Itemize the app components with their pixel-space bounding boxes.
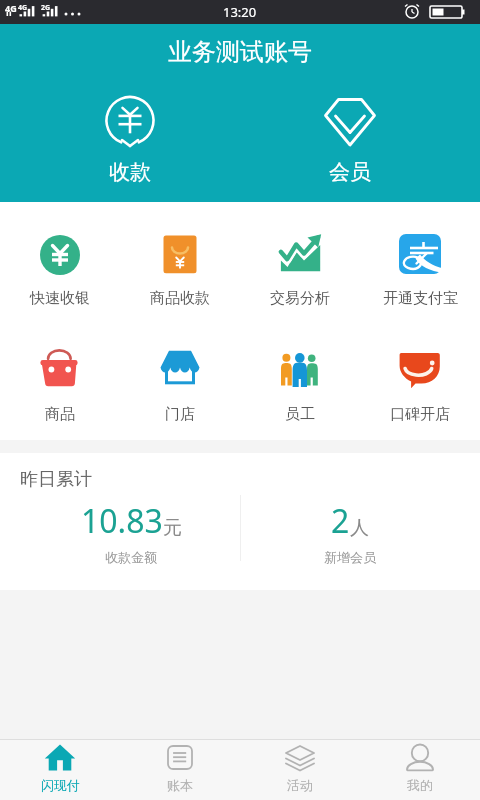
staticText: 人 <box>350 516 369 540</box>
button[interactable]: 门店 <box>120 350 240 424</box>
staticText: 业务测试账号 <box>168 37 312 67</box>
button[interactable]: 账本 <box>120 740 240 800</box>
staticText: 商品收款 <box>150 289 210 308</box>
staticText: 10.83 <box>81 499 163 543</box>
other: 收款 <box>103 94 157 146</box>
staticText: 交易分析 <box>270 289 330 308</box>
other: 会员 <box>323 94 377 146</box>
staticText: 2 <box>331 499 350 543</box>
button[interactable]: 收款 <box>75 94 185 185</box>
staticText: 员工 <box>285 405 315 424</box>
staticText: 我的 <box>407 777 433 793</box>
button[interactable]: 活动 <box>240 740 360 800</box>
staticText: 门店 <box>165 405 195 424</box>
staticText: 4G <box>18 3 28 13</box>
button[interactable]: 商品 <box>0 350 120 424</box>
staticText: 13:20 <box>223 3 257 21</box>
button[interactable]: 会员 <box>295 94 405 185</box>
staticText: 收款 <box>109 159 151 185</box>
button[interactable]: 开通支付宝 <box>360 234 480 308</box>
staticText: 收款金额 <box>105 549 157 565</box>
staticText: 商品 <box>45 405 75 424</box>
staticText: 会员 <box>329 159 371 185</box>
staticText: 快速收银 <box>30 289 90 308</box>
staticText: 活动 <box>287 777 313 793</box>
staticText: 昨日累计 <box>20 468 92 491</box>
staticText: 2G <box>41 3 51 13</box>
staticText: 开通支付宝 <box>383 289 458 308</box>
button[interactable]: 商品收款 <box>120 234 240 308</box>
button[interactable]: 闪现付 <box>0 740 120 800</box>
staticText: 闪现付 <box>41 777 80 793</box>
staticText: 口碑开店 <box>390 405 450 424</box>
staticText: 元 <box>163 516 182 540</box>
button[interactable]: 我的 <box>360 740 480 800</box>
button[interactable]: 交易分析 <box>240 234 360 308</box>
button[interactable]: 口碑开店 <box>360 350 480 424</box>
button[interactable]: 快速收银 <box>0 234 120 308</box>
staticText: 账本 <box>167 777 193 793</box>
button[interactable]: 员工 <box>240 350 360 424</box>
staticText: 新增会员 <box>324 549 376 565</box>
staticText: 4G <box>5 2 17 14</box>
